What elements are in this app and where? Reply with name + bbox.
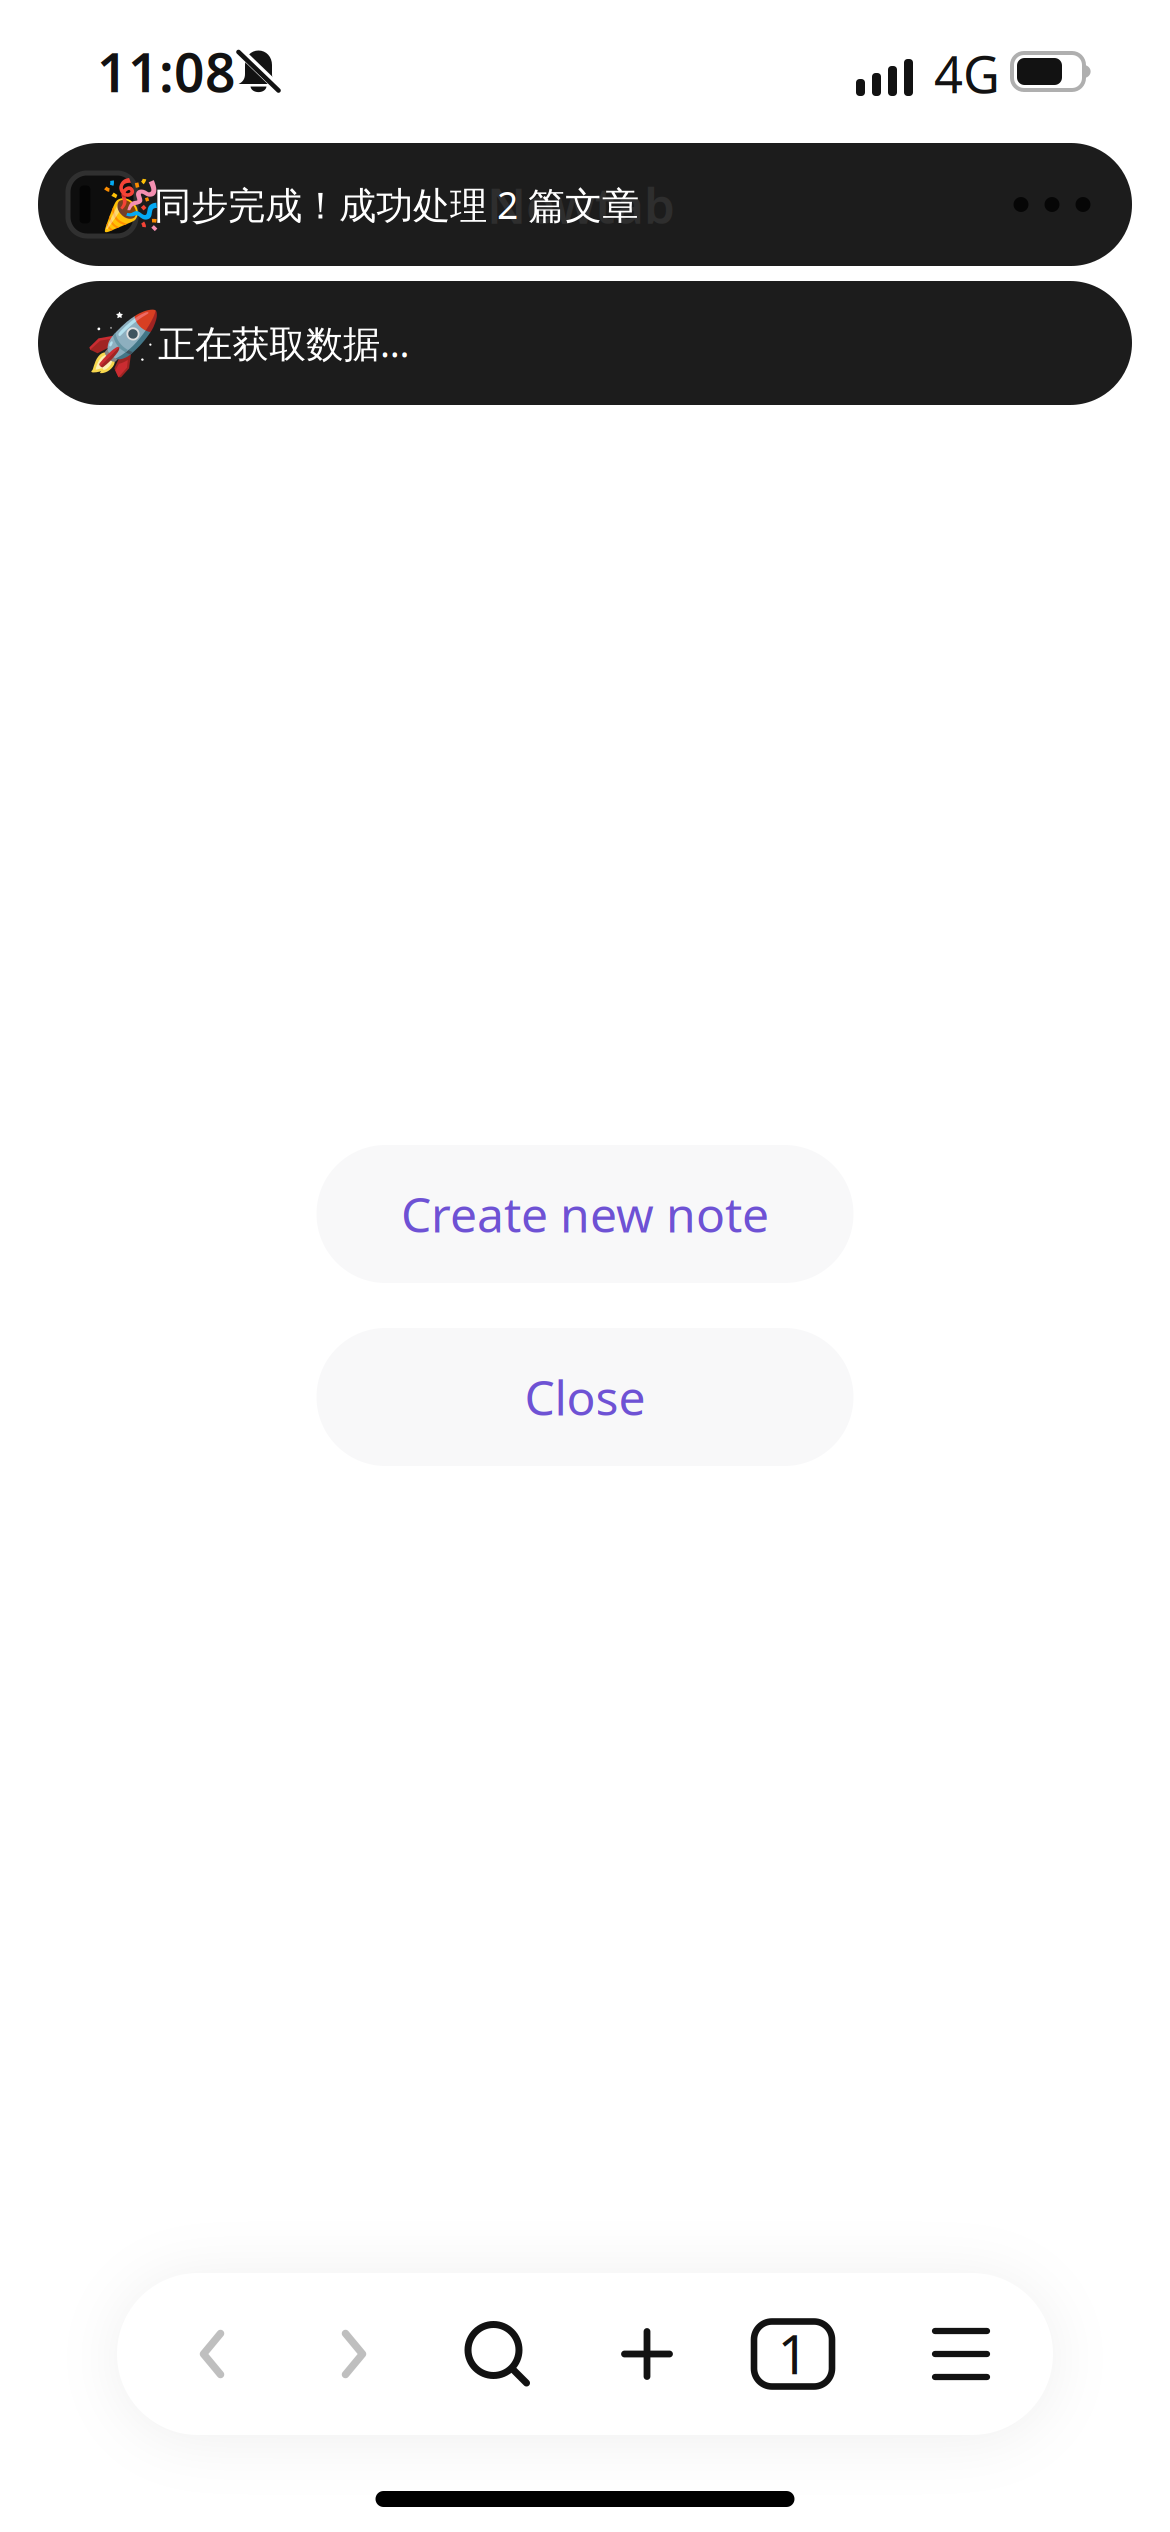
staticText: Create new note <box>401 1182 769 1246</box>
staticText: 🎉 <box>99 177 160 234</box>
staticText: Close <box>524 1365 645 1429</box>
button[interactable]: Close <box>316 1328 853 1466</box>
button[interactable]: Tabs <box>738 2273 848 2435</box>
staticText: 🚀 <box>85 308 161 378</box>
button[interactable]: New Tab <box>592 2273 702 2435</box>
staticText: 正在获取数据… <box>158 318 410 368</box>
staticText: 4G <box>934 40 1000 107</box>
staticText: 11:08 <box>97 36 236 107</box>
button[interactable]: Menu <box>906 2273 1016 2435</box>
button[interactable]: Forward <box>299 2273 409 2435</box>
staticText: 1 <box>777 2317 808 2389</box>
button[interactable]: Search <box>442 2273 552 2435</box>
button[interactable]: Back <box>157 2273 267 2435</box>
button[interactable]: Create new note <box>316 1145 853 1283</box>
staticText: 同步完成！成功处理 2 篇文章 <box>154 180 639 229</box>
staticText: Newtab <box>487 172 675 237</box>
